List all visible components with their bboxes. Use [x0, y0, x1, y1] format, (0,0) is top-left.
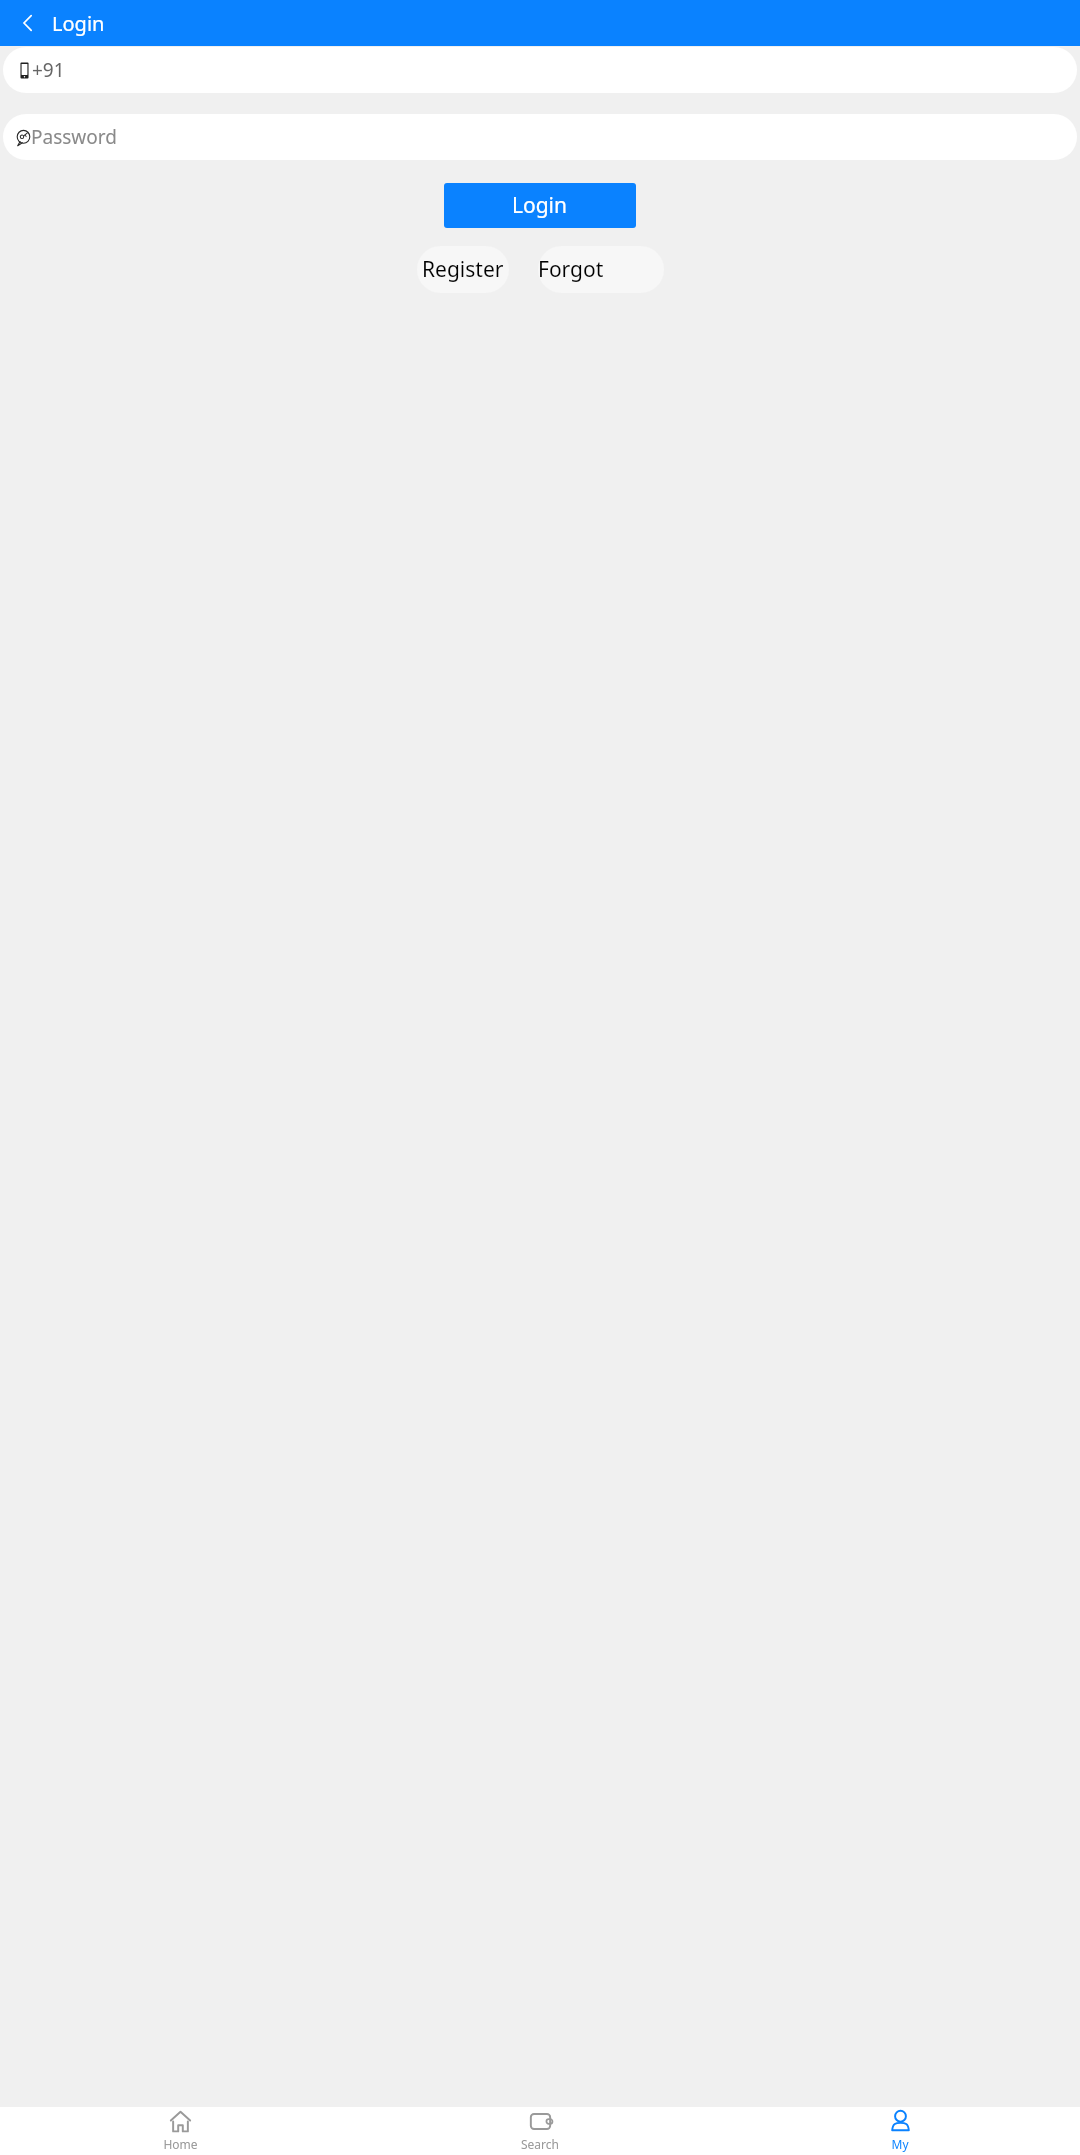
button[interactable]: My: [720, 2107, 1080, 2155]
button[interactable]: Register: [417, 246, 509, 293]
button[interactable]: Login: [444, 183, 636, 228]
staticText: Register: [422, 255, 504, 284]
button[interactable]: Back: [8, 3, 48, 43]
button[interactable]: Forgot Password?: [538, 246, 664, 293]
staticText: Login: [512, 191, 568, 220]
staticText: Search: [521, 2136, 559, 2152]
staticText: Login: [52, 10, 105, 37]
button[interactable]: Home: [0, 2107, 360, 2155]
staticText: Home: [163, 2136, 198, 2152]
staticText: Forgot Password?: [538, 255, 664, 284]
button[interactable]: Search: [360, 2107, 720, 2155]
staticText: Password: [31, 124, 117, 150]
staticText: My: [891, 2136, 909, 2152]
staticText: +91: [32, 57, 65, 83]
button[interactable]: Password: [3, 114, 1077, 160]
button[interactable]: +91: [3, 47, 1077, 93]
